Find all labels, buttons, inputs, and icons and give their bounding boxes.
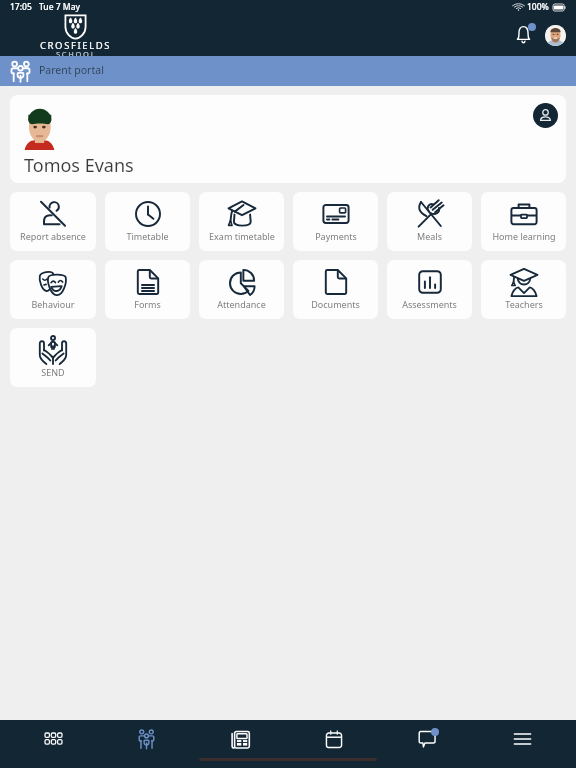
staticText: Exam timetable <box>209 230 275 242</box>
button[interactable]: Parent portal <box>100 720 193 758</box>
button[interactable]: Messages <box>381 720 475 758</box>
button[interactable]: Calendar <box>287 720 381 758</box>
staticText: Forms <box>134 298 161 310</box>
button[interactable]: Payments <box>293 192 378 251</box>
staticText: Documents <box>311 298 360 310</box>
button[interactable]: Attendance <box>199 260 284 319</box>
staticText: Tue 7 May <box>39 1 80 13</box>
button[interactable]: Profile <box>545 25 566 46</box>
staticText: Meals <box>417 230 442 242</box>
button[interactable]: Assessments <box>387 260 472 319</box>
staticText: Payments <box>315 230 357 242</box>
button[interactable]: Timetable <box>105 192 190 251</box>
button[interactable]: Account <box>533 103 558 128</box>
button[interactable]: Meals <box>387 192 472 251</box>
button[interactable]: Menu <box>475 720 569 758</box>
staticText: SCHOOL <box>56 49 97 59</box>
staticText: Tomos Evans <box>24 153 134 178</box>
staticText: SEND <box>41 366 65 378</box>
button[interactable]: Forms <box>105 260 190 319</box>
button[interactable]: SEND <box>10 328 96 387</box>
button[interactable]: Notifications <box>508 20 538 50</box>
button[interactable]: Parent portal <box>0 56 576 86</box>
staticText: Parent portal <box>39 63 104 77</box>
button[interactable]: Report absence <box>10 192 96 251</box>
button[interactable]: News <box>193 720 287 758</box>
button[interactable]: Documents <box>293 260 378 319</box>
staticText: Assessments <box>402 298 457 310</box>
staticText: CROSFIELDS <box>40 39 112 52</box>
button[interactable]: Teachers <box>481 260 566 319</box>
staticText: Report absence <box>20 230 86 242</box>
button[interactable]: Dashboard <box>7 720 100 758</box>
button[interactable]: Exam timetable <box>199 192 284 251</box>
staticText: Teachers <box>505 298 543 310</box>
button[interactable]: Home learning <box>481 192 566 251</box>
staticText: 100% <box>527 1 549 13</box>
staticText: Attendance <box>217 298 266 310</box>
staticText: Home learning <box>492 230 556 242</box>
staticText: Behaviour <box>31 298 75 310</box>
staticText: 17:05 <box>10 1 32 13</box>
button[interactable]: Tomos Evans <box>10 95 566 183</box>
staticText: Timetable <box>126 230 169 242</box>
button[interactable]: Behaviour <box>10 260 96 319</box>
